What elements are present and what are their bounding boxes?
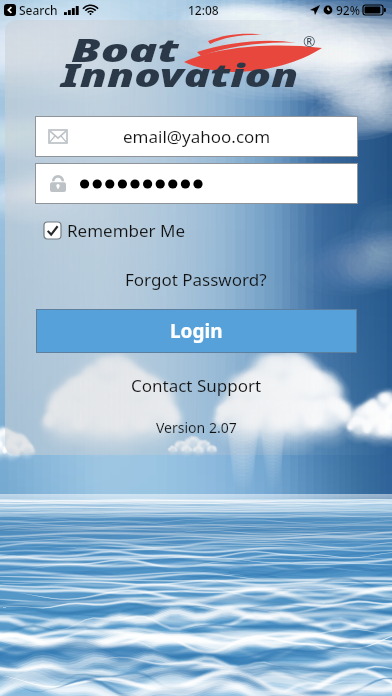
button[interactable]: Remember Me <box>44 218 186 243</box>
button[interactable]: Contact Support <box>0 372 392 398</box>
staticText: Login <box>170 318 223 344</box>
button[interactable]: email@yahoo.com <box>35 116 358 157</box>
staticText: Search <box>19 2 58 18</box>
staticText: ® <box>303 31 316 51</box>
button[interactable]: Forgot Password? <box>0 266 392 292</box>
staticText: 12:08 <box>188 2 219 18</box>
button[interactable]: Login <box>36 309 357 353</box>
button[interactable] <box>35 163 358 204</box>
staticText: Innovation <box>61 53 299 96</box>
staticText: Boat <box>71 28 180 71</box>
staticText: Version 2.07 <box>156 418 237 437</box>
staticText: email@yahoo.com <box>123 125 271 148</box>
staticText: Forgot Password? <box>125 268 267 291</box>
staticText: Contact Support <box>131 374 262 397</box>
staticText: Remember Me <box>67 219 186 242</box>
staticText: 92% <box>336 2 360 18</box>
